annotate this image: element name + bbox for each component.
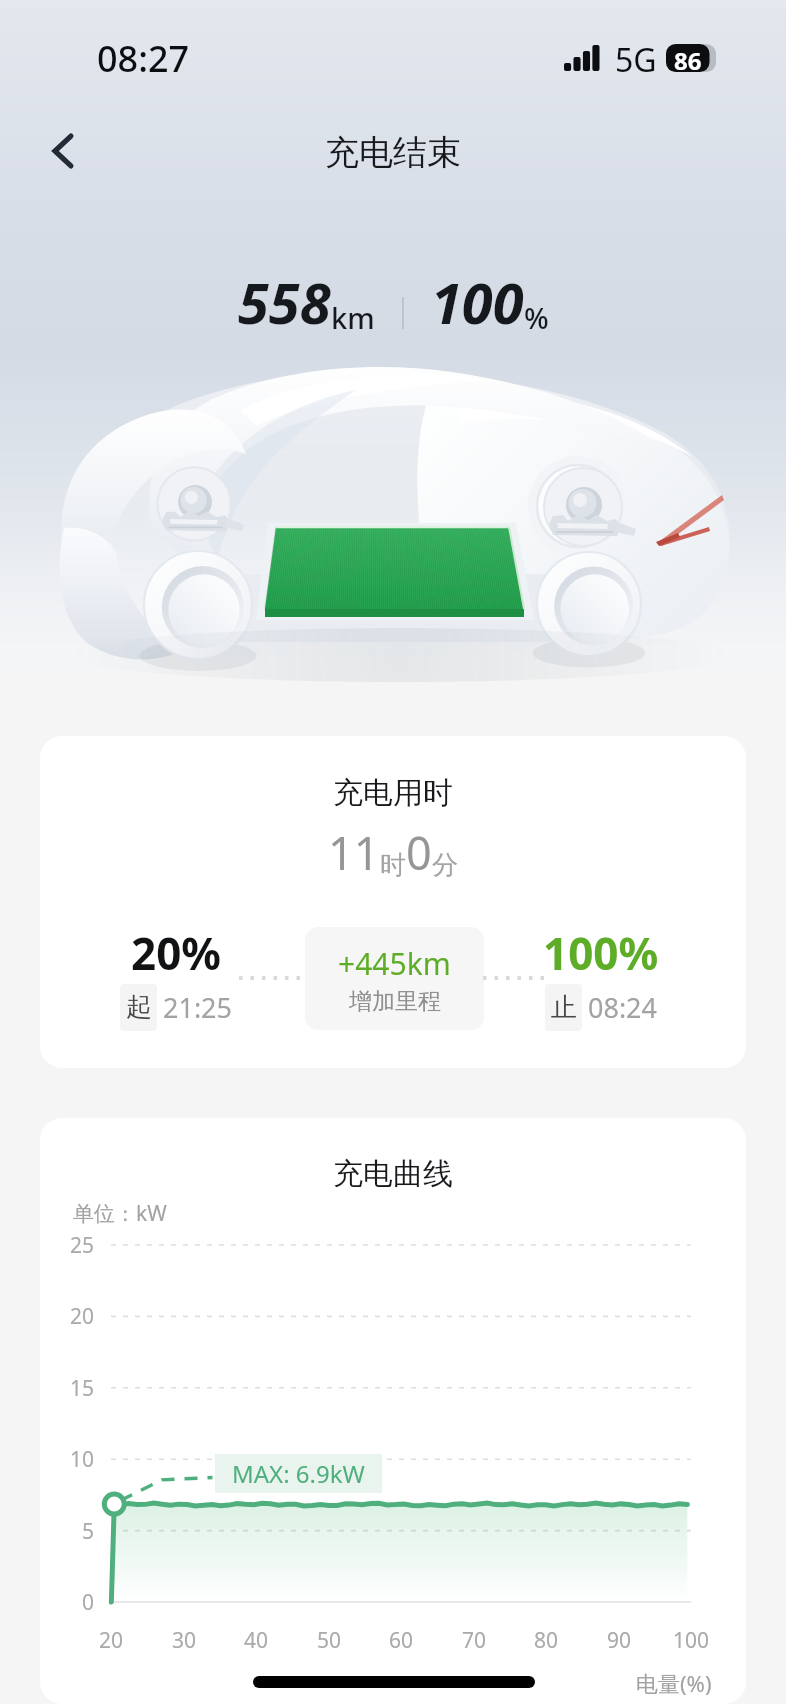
staticText: 558: [238, 264, 331, 340]
staticText: 100%: [543, 923, 659, 983]
staticText: 10: [70, 1445, 95, 1473]
staticText: 15: [70, 1374, 95, 1402]
staticText: 充电用时: [333, 774, 453, 812]
button[interactable]: Back: [25, 117, 93, 185]
staticText: 70: [462, 1626, 487, 1654]
staticText: 分: [432, 849, 458, 882]
staticText: 时: [380, 849, 406, 882]
staticText: 20: [99, 1626, 124, 1654]
staticText: 08:27: [97, 34, 190, 83]
button[interactable]: 充电曲线: [40, 1118, 746, 1704]
staticText: 60: [389, 1626, 414, 1654]
staticText: 0: [406, 822, 432, 883]
staticText: km: [331, 298, 375, 337]
staticText: 单位：kW: [73, 1199, 167, 1228]
staticText: 5: [82, 1517, 95, 1545]
staticText: 止: [551, 991, 577, 1024]
staticText: 0: [82, 1588, 95, 1616]
staticText: 100: [431, 264, 524, 340]
staticText: 5G: [615, 38, 657, 82]
staticText: 08:24: [588, 989, 658, 1026]
staticText: 21:25: [163, 989, 233, 1026]
staticText: 充电结束: [325, 131, 461, 174]
staticText: 100: [673, 1626, 710, 1654]
staticText: 充电曲线: [333, 1155, 453, 1193]
staticText: 86: [674, 44, 702, 72]
staticText: 20%: [131, 923, 222, 983]
staticText: %: [524, 298, 549, 337]
staticText: 30: [172, 1626, 197, 1654]
staticText: 增加里程: [349, 987, 441, 1016]
staticText: 起: [126, 991, 152, 1024]
staticText: 90: [607, 1626, 632, 1654]
staticText: 80: [534, 1626, 559, 1654]
staticText: 40: [244, 1626, 269, 1654]
button[interactable]: 充电用时: [40, 736, 746, 1068]
staticText: +445km: [338, 943, 451, 984]
staticText: 电量(%): [636, 1668, 712, 1698]
staticText: 50: [317, 1626, 342, 1654]
staticText: 20: [70, 1302, 95, 1330]
staticText: 25: [70, 1231, 95, 1259]
staticText: MAX: 6.9kW: [232, 1457, 365, 1490]
staticText: 11: [328, 822, 380, 883]
